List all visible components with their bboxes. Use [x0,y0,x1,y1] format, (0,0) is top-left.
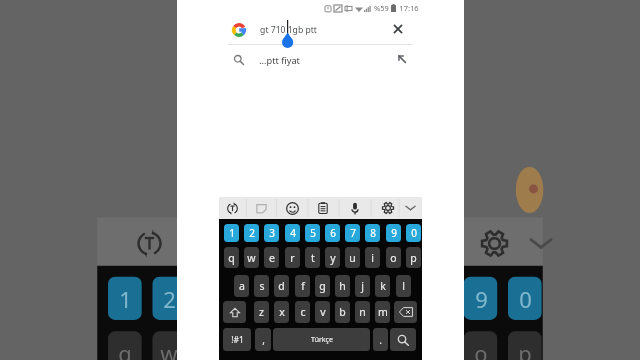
button[interactable]: 8 [365,224,380,242]
button[interactable]: x [274,301,289,323]
staticText: , [262,333,265,347]
button[interactable]: f [295,275,310,297]
button[interactable]: c [295,301,310,323]
staticText: 6 [330,226,336,240]
button[interactable]: o [386,247,401,268]
staticText: p [518,338,532,360]
staticText: 5 [310,226,316,240]
button[interactable]: g [315,275,330,297]
button[interactable]: 7 [345,224,360,242]
button[interactable]: i [365,247,380,268]
staticText: 9 [391,226,397,240]
button[interactable]: chevron [399,197,421,219]
button[interactable]: 5 [305,224,320,242]
staticText: 4 [290,226,296,240]
button[interactable]: search [390,328,416,351]
staticText: 7 [350,226,356,240]
staticText: r [290,251,295,265]
staticText: w [247,251,256,265]
button[interactable]: m [375,301,390,323]
staticText: gt 710 1gb ptt [260,24,317,36]
button[interactable]: b [335,301,350,323]
button[interactable]: Türkçe [273,328,370,351]
button[interactable]: 6 [325,224,340,242]
staticText: 8 [370,226,376,240]
staticText: g [319,279,326,293]
button[interactable]: shift [223,301,246,323]
button[interactable]: sticker [250,197,272,219]
staticText: 4 [252,284,265,314]
staticText: t [311,251,315,265]
staticText: i [371,251,374,265]
button[interactable]: !#1 [223,328,251,351]
button[interactable]: n [355,301,370,323]
staticText: 0 [519,284,532,314]
staticText: %59 [374,3,389,13]
button[interactable]: s [254,275,269,297]
button[interactable]: r [285,247,300,268]
button[interactable]: y [325,247,340,268]
staticText: 5 [297,284,310,314]
staticText: m [378,305,388,319]
button[interactable]: e [264,247,279,268]
button[interactable]: z [254,301,269,323]
button[interactable]: ...ptt fiyat [219,48,422,76]
button[interactable]: k [375,275,390,297]
staticText: q [118,338,132,360]
button[interactable]: mic [344,197,366,219]
button[interactable]: 9 [386,224,401,242]
staticText: c [300,305,306,319]
staticText: a [239,279,245,293]
button[interactable]: Search box [219,16,422,48]
button[interactable]: d [274,275,289,297]
staticText: h [339,279,346,293]
button[interactable]: emoji [281,197,303,219]
button[interactable]: settings [377,197,399,219]
staticText: 0 [411,226,417,240]
button[interactable]: , [255,328,271,351]
staticText: 17:16 [399,3,419,13]
staticText: f [301,279,305,293]
staticText: 2 [249,226,255,240]
button[interactable]: 2 [244,224,259,242]
staticText: 1 [229,226,235,240]
button[interactable]: l [396,275,411,297]
staticText: z [259,305,264,319]
button[interactable]: 1 [224,224,239,242]
staticText: w [160,338,178,360]
staticText: k [380,279,386,293]
button[interactable]: Clear search [388,19,408,39]
button[interactable]: t [305,247,320,268]
staticText: 3 [269,226,275,240]
button[interactable]: 4 [285,224,300,242]
staticText: 1 [119,284,132,314]
button[interactable]: h [335,275,350,297]
staticText: q [228,251,235,265]
button[interactable]: clipboard [312,197,334,219]
staticText: v [320,305,326,319]
button[interactable]: Insert suggestion [392,49,412,69]
staticText: e [269,251,275,265]
staticText: p [410,251,417,265]
staticText: l [402,279,405,293]
staticText: d [278,279,285,293]
staticText: s [259,279,265,293]
staticText: o [474,338,488,360]
button[interactable]: a [234,275,249,297]
staticText: t [299,338,307,360]
button[interactable]: v [315,301,330,323]
button[interactable]: u [345,247,360,268]
button[interactable]: j [355,275,370,297]
button[interactable]: p [406,247,421,268]
button[interactable]: w [244,247,259,268]
button[interactable]: 0 [406,224,421,242]
button[interactable]: backspace [394,301,417,323]
button[interactable]: translate [221,197,243,219]
button[interactable]: . [373,328,388,351]
staticText: 2 [163,284,176,314]
staticText: r [253,338,263,360]
button[interactable]: 3 [264,224,279,242]
button[interactable]: q [224,247,239,268]
